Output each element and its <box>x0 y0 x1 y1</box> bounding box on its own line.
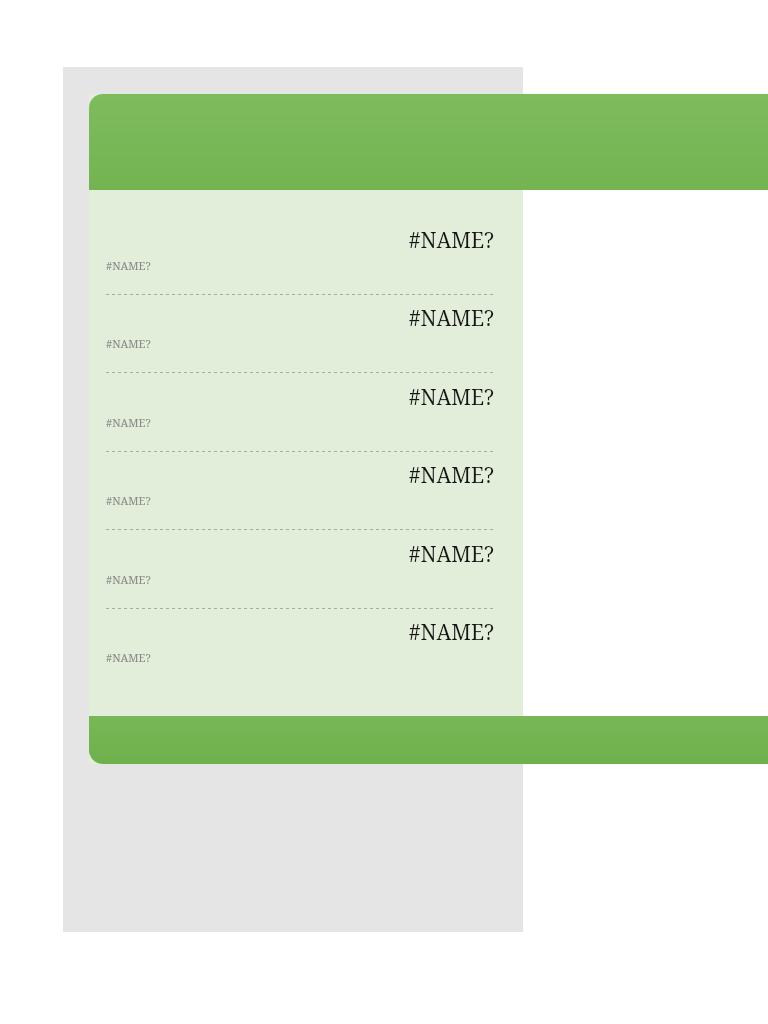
staticText: #NAME? <box>89 383 494 412</box>
button[interactable]: #NAME? <box>89 531 523 610</box>
button[interactable]: Header <box>89 94 768 190</box>
staticText: #NAME? <box>106 258 151 273</box>
staticText: #NAME? <box>106 415 151 430</box>
staticText: #NAME? <box>89 618 494 647</box>
staticText: #NAME? <box>106 336 151 351</box>
button[interactable]: #NAME? <box>89 217 523 296</box>
button[interactable]: #NAME? <box>89 374 523 453</box>
staticText: #NAME? <box>89 461 494 490</box>
staticText: #NAME? <box>89 226 494 255</box>
staticText: #NAME? <box>89 304 494 333</box>
staticText: #NAME? <box>106 650 151 665</box>
staticText: #NAME? <box>106 493 151 508</box>
staticText: #NAME? <box>106 572 151 587</box>
staticText: #NAME? <box>89 540 494 569</box>
button[interactable]: #NAME? <box>89 452 523 531</box>
button[interactable]: Footer <box>89 716 768 764</box>
button[interactable]: #NAME? <box>89 295 523 374</box>
button[interactable]: #NAME? <box>89 609 523 688</box>
